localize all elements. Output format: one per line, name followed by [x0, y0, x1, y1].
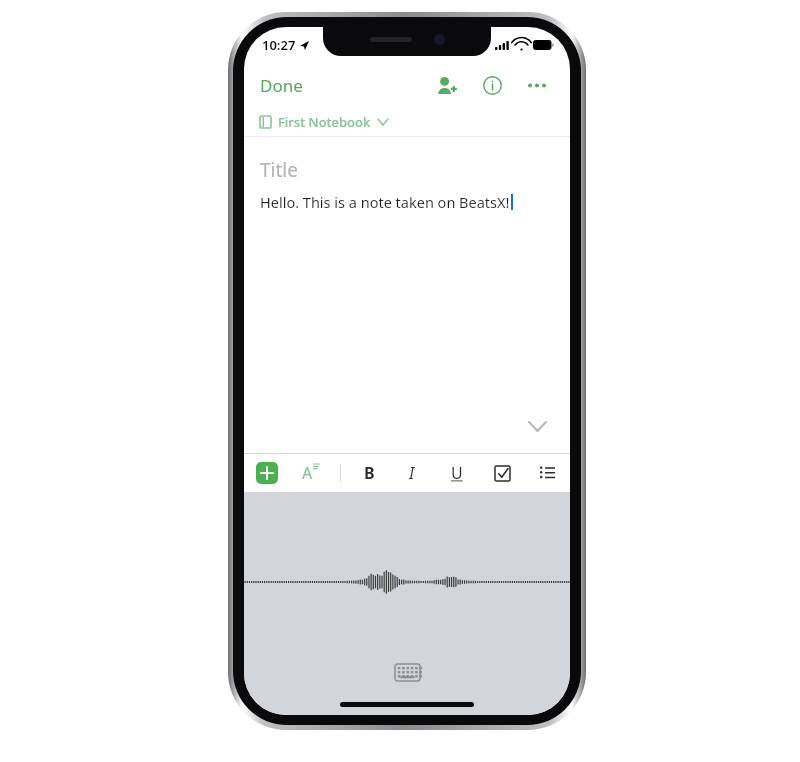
staticText: First Notebook: [278, 113, 371, 131]
staticText: I: [409, 462, 415, 484]
button[interactable]: Note info: [473, 66, 512, 105]
button[interactable]: First Notebook: [244, 107, 570, 136]
button[interactable]: Share note: [427, 67, 467, 104]
button[interactable]: Collapse: [521, 414, 554, 439]
staticText: A: [302, 462, 313, 484]
button[interactable]: Show keyboard: [389, 658, 426, 687]
staticText: Done: [260, 74, 303, 97]
button[interactable]: More options: [518, 73, 556, 98]
staticText: 10:27: [262, 36, 296, 54]
button[interactable]: Done: [244, 66, 319, 105]
staticText: Title: [260, 157, 298, 183]
staticText: Hello. This is a note taken on BeatsX!: [260, 192, 510, 212]
button[interactable]: Checklist: [490, 461, 515, 486]
button[interactable]: Bold: [359, 458, 380, 488]
staticText: U: [451, 462, 463, 484]
staticText: B: [364, 462, 375, 484]
button[interactable]: Numbered list: [535, 462, 560, 485]
button[interactable]: Add attachment: [256, 462, 278, 484]
button[interactable]: Italic: [404, 458, 420, 488]
button[interactable]: Underline: [446, 458, 468, 488]
button[interactable]: Text style: [298, 458, 324, 488]
